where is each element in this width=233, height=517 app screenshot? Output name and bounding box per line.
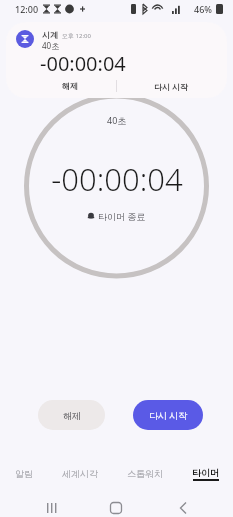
staticText: 해제 [62,81,78,91]
button[interactable]: 다시 시작 [131,78,211,94]
button[interactable]: 시계 [6,22,227,98]
staticText: 스톱워치 [127,468,163,479]
button[interactable]: 세계시각 [56,466,104,481]
button[interactable]: 스톱워치 [121,466,169,481]
button[interactable]: Recent apps [40,496,64,517]
staticText: 타이머 종료 [98,210,146,222]
staticText: 세계시각 [62,468,98,479]
button[interactable]: 다시 시작 [133,400,203,430]
button[interactable]: 해제 [38,400,105,430]
staticText: 46% [194,3,212,15]
staticText: 40초 [42,40,60,51]
button[interactable]: 타이머 [186,465,225,482]
staticText: 40초 [107,114,127,126]
staticText: 12:00 [15,3,39,15]
button[interactable]: Back [170,496,194,517]
staticText: -00:00:04 [51,158,183,200]
staticText: 알림 [15,468,33,479]
staticText: 타이머 [192,467,219,478]
staticText: 시계 [42,30,58,40]
button[interactable]: Home [104,496,128,517]
staticText: 해제 [63,410,81,421]
staticText: 다시 시작 [154,81,189,92]
staticText: -00:00:04 [40,50,126,77]
staticText: 오후 12:00 [62,32,91,40]
button[interactable]: 알림 [9,466,39,481]
button[interactable]: 해제 [36,78,104,94]
staticText: 다시 시작 [149,409,188,421]
